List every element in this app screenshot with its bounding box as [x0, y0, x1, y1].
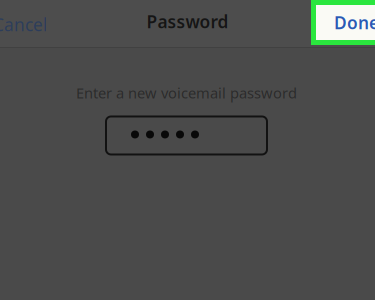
button[interactable]: Voicemail password	[106, 116, 267, 154]
button[interactable]: Cancel	[0, 1, 53, 48]
staticText: Done	[334, 11, 375, 34]
staticText: Password	[146, 10, 228, 33]
button[interactable]: Done	[311, 0, 375, 45]
staticText: Cancel	[0, 13, 47, 36]
staticText: Enter a new voicemail password	[76, 83, 297, 102]
